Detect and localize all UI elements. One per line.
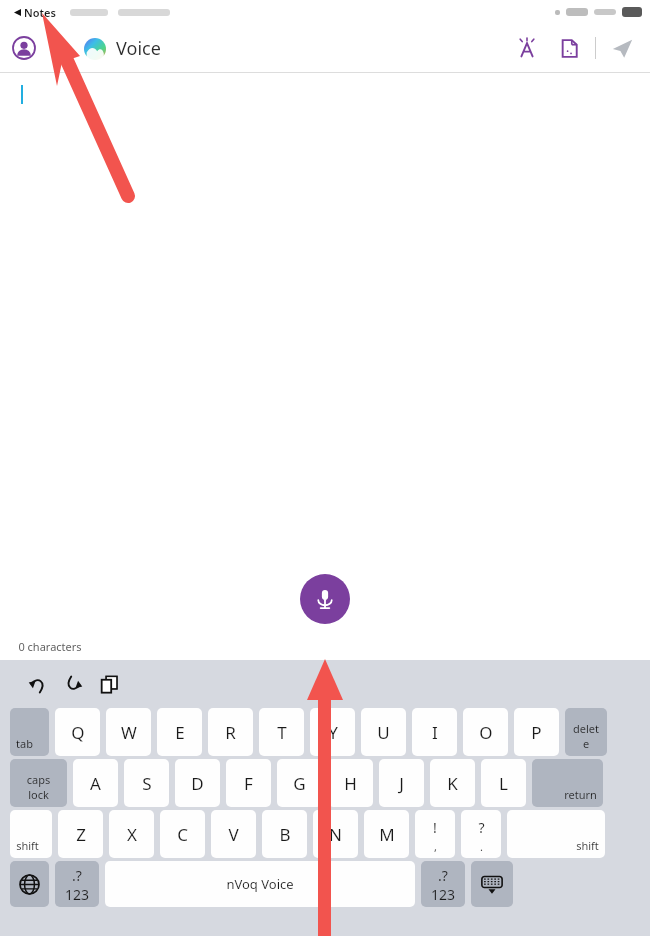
staticText: W — [121, 721, 137, 744]
staticText: C — [177, 823, 188, 846]
button[interactable]: E — [157, 708, 202, 756]
staticText: . — [480, 839, 483, 854]
button[interactable]: nVoq Voice — [105, 861, 415, 907]
button[interactable]: Undo — [22, 669, 52, 699]
button[interactable]: X — [109, 810, 154, 858]
button[interactable]: Send — [608, 34, 636, 62]
button[interactable]: B — [262, 810, 307, 858]
staticText: P — [531, 721, 542, 744]
staticText: Y — [328, 721, 338, 744]
staticText: V — [228, 823, 239, 846]
button[interactable]: Account — [12, 36, 36, 60]
staticText: H — [344, 772, 357, 795]
button[interactable]: Z — [58, 810, 103, 858]
button[interactable]: K — [430, 759, 475, 807]
staticText: tab — [16, 736, 33, 751]
button[interactable]: caps lock — [10, 759, 67, 807]
staticText: .?123 — [427, 866, 459, 902]
button[interactable]: Redo — [58, 669, 88, 699]
staticText: ! — [433, 818, 437, 837]
button[interactable]: Notes — [14, 5, 56, 20]
staticText: return — [564, 787, 597, 802]
button[interactable]: U — [361, 708, 406, 756]
staticText: , — [434, 839, 437, 854]
staticText: A — [90, 772, 101, 795]
staticText: .?123 — [61, 866, 93, 902]
staticText: caps lock — [16, 772, 61, 802]
button[interactable]: I — [412, 708, 457, 756]
button[interactable]: N — [313, 810, 358, 858]
staticText: U — [377, 721, 390, 744]
button[interactable]: S — [124, 759, 169, 807]
button[interactable]: H — [328, 759, 373, 807]
button[interactable]: ! — [415, 810, 455, 858]
button[interactable]: Paste — [94, 669, 124, 699]
staticText: G — [293, 772, 306, 795]
button[interactable]: Document — [555, 34, 583, 62]
button[interactable]: Q — [55, 708, 100, 756]
staticText: S — [142, 772, 152, 795]
staticText: Z — [76, 823, 86, 846]
button[interactable]: .?123 — [55, 861, 99, 907]
button[interactable]: delete — [565, 708, 607, 756]
button[interactable]: Format text — [513, 34, 541, 62]
button[interactable]: ? — [461, 810, 501, 858]
staticText: K — [447, 772, 458, 795]
staticText: I — [432, 721, 438, 744]
staticText: T — [277, 721, 287, 744]
button[interactable]: Hide keyboard — [471, 861, 513, 907]
staticText: L — [499, 772, 508, 795]
button[interactable]: D — [175, 759, 220, 807]
staticText: ? — [478, 818, 485, 837]
button[interactable]: shift — [10, 810, 52, 858]
button[interactable]: O — [463, 708, 508, 756]
button[interactable]: T — [259, 708, 304, 756]
staticText: F — [244, 772, 253, 795]
button[interactable]: L — [481, 759, 526, 807]
button[interactable]: Y — [310, 708, 355, 756]
staticText: N — [329, 823, 342, 846]
button[interactable]: P — [514, 708, 559, 756]
staticText: J — [399, 772, 404, 795]
button[interactable]: Record voice — [300, 574, 350, 624]
staticText: Voice — [116, 36, 161, 61]
button[interactable]: tab — [10, 708, 49, 756]
button[interactable]: W — [106, 708, 151, 756]
button[interactable]: C — [160, 810, 205, 858]
button[interactable]: G — [277, 759, 322, 807]
staticText: D — [191, 772, 204, 795]
button[interactable]: .?123 — [421, 861, 465, 907]
staticText: delete — [571, 721, 601, 751]
staticText: nVoq Voice — [226, 875, 294, 893]
staticText: 0 characters — [18, 639, 82, 654]
button[interactable]: M — [364, 810, 409, 858]
staticText: X — [127, 823, 137, 846]
staticText: Notes — [24, 5, 56, 20]
staticText: O — [479, 721, 493, 744]
button[interactable]: F — [226, 759, 271, 807]
staticText: M — [379, 823, 395, 846]
button[interactable]: V — [211, 810, 256, 858]
button[interactable]: return — [532, 759, 603, 807]
staticText: shift — [576, 838, 599, 853]
staticText: R — [225, 721, 236, 744]
staticText: shift — [16, 838, 39, 853]
button[interactable]: R — [208, 708, 253, 756]
staticText: B — [279, 823, 291, 846]
button[interactable]: A — [73, 759, 118, 807]
button[interactable]: Change language — [10, 861, 49, 907]
button[interactable]: shift — [507, 810, 605, 858]
staticText: Q — [71, 721, 85, 744]
button[interactable]: J — [379, 759, 424, 807]
staticText: E — [175, 721, 185, 744]
